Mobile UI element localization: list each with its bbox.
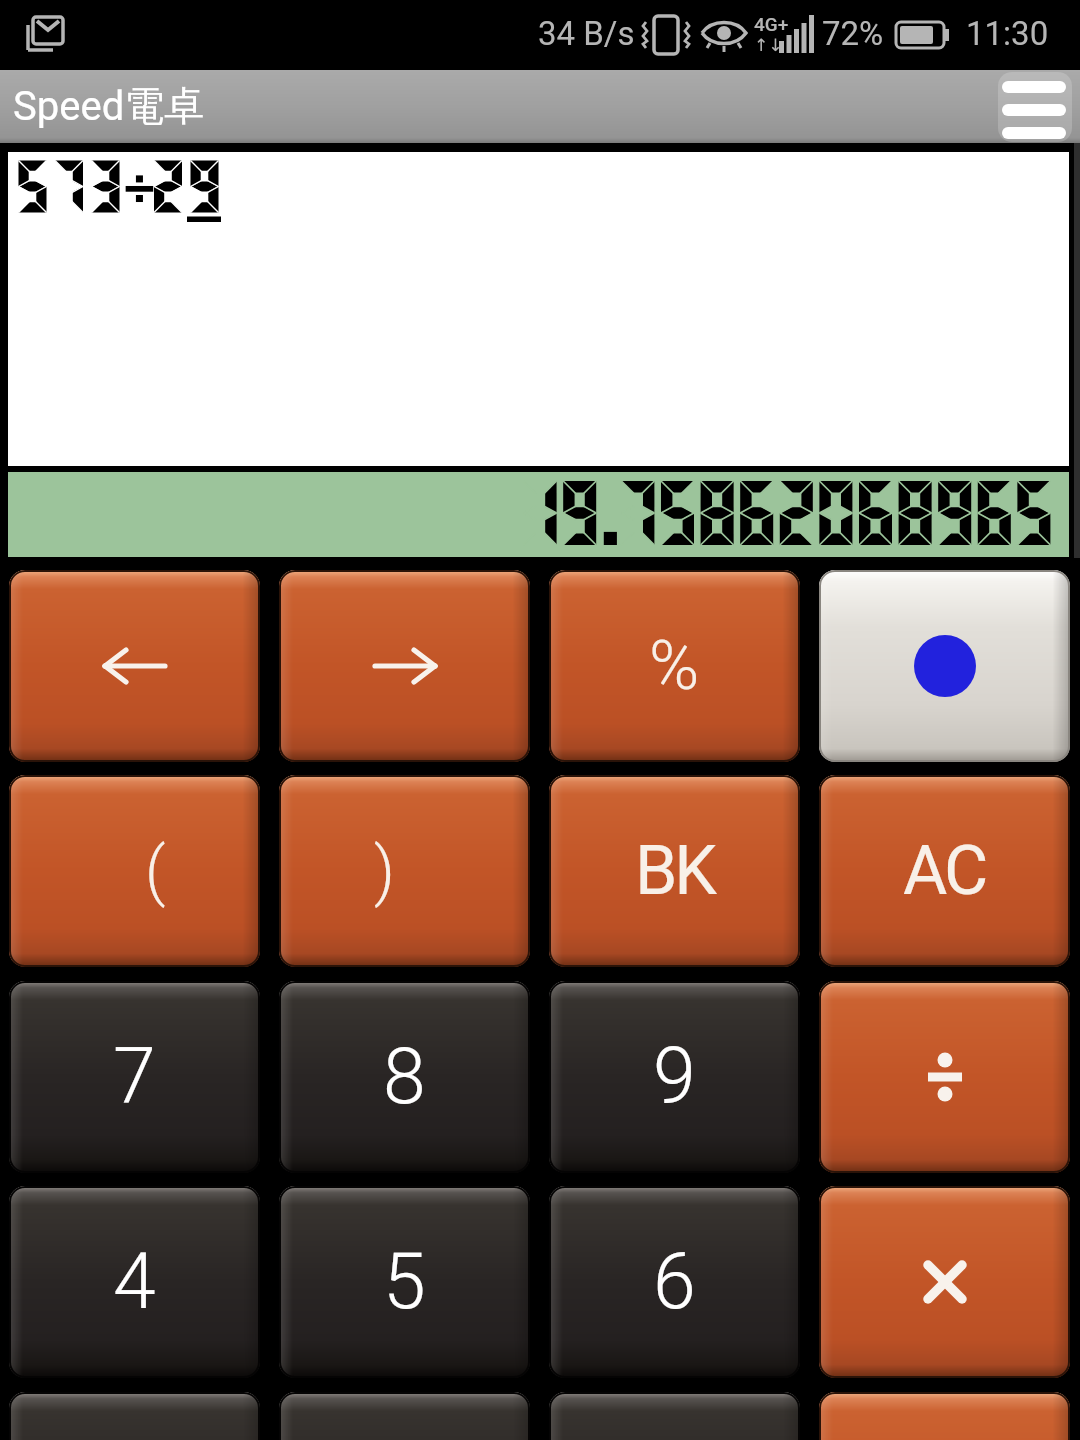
button[interactable]: ) <box>279 775 530 967</box>
button[interactable] <box>996 74 1072 140</box>
staticText: ) <box>374 834 395 909</box>
button[interactable] <box>819 1392 1070 1440</box>
button[interactable] <box>819 570 1070 762</box>
staticText: 4 <box>113 1237 156 1327</box>
button[interactable]: ( <box>9 775 260 967</box>
staticText: 9 <box>653 1032 696 1122</box>
button[interactable]: BK <box>549 775 800 967</box>
button[interactable]: 6 <box>549 1186 800 1378</box>
staticText: 34 B/s <box>538 14 635 53</box>
staticText: ( <box>145 834 166 909</box>
button[interactable]: % <box>549 570 800 762</box>
staticText: 7 <box>113 1032 156 1122</box>
button[interactable] <box>279 570 530 762</box>
staticText: Speed電卓 <box>13 81 205 131</box>
button[interactable] <box>819 981 1070 1173</box>
button[interactable] <box>9 570 260 762</box>
staticText: 6 <box>653 1237 696 1327</box>
staticText: ↑↓ <box>754 35 783 55</box>
button[interactable]: 5 <box>279 1186 530 1378</box>
button[interactable]: 8 <box>279 981 530 1173</box>
button[interactable]: 3 <box>549 1392 800 1440</box>
button[interactable]: 1 <box>9 1392 260 1440</box>
staticText: 11:30 <box>966 14 1049 53</box>
button[interactable]: 4 <box>9 1186 260 1378</box>
button[interactable]: 7 <box>9 981 260 1173</box>
staticText: 5 <box>383 1237 426 1327</box>
staticText: BK <box>635 831 715 911</box>
staticText: AC <box>903 831 986 911</box>
button[interactable]: 9 <box>549 981 800 1173</box>
button[interactable] <box>819 1186 1070 1378</box>
button[interactable]: 2 <box>279 1392 530 1440</box>
staticText: 4G+ <box>754 13 789 35</box>
button[interactable]: AC <box>819 775 1070 967</box>
staticText: 8 <box>383 1032 426 1122</box>
staticText: 72% <box>822 14 884 53</box>
staticText: % <box>649 626 700 706</box>
